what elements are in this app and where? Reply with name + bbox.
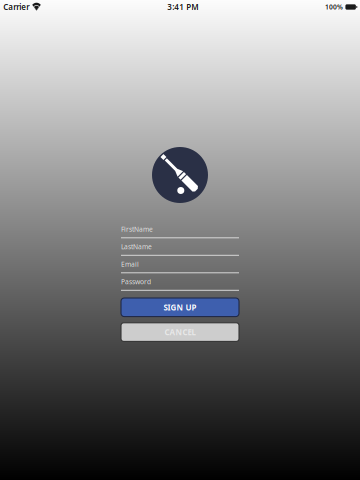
staticText: Password — [121, 277, 151, 286]
staticText: Email — [121, 260, 139, 268]
staticText: 100% — [325, 3, 343, 11]
staticText: 3:41 PM — [167, 2, 198, 12]
staticText: CANCEL — [164, 327, 195, 337]
staticText: LastName — [121, 242, 152, 251]
staticText: SIGN UP — [163, 302, 196, 313]
staticText: Carrier — [3, 2, 29, 12]
staticText: FirstName — [121, 225, 153, 233]
button[interactable]: SIGN UP — [121, 298, 239, 317]
button[interactable]: CANCEL — [121, 323, 239, 341]
